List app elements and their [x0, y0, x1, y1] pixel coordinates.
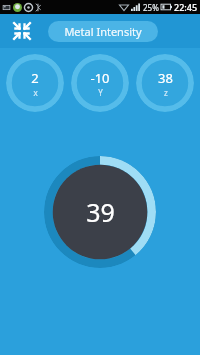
button[interactable]: 39	[44, 156, 156, 268]
staticText: Y	[98, 87, 103, 98]
staticText: z	[164, 87, 168, 98]
staticText: 22:45	[174, 1, 198, 13]
staticText: 2	[31, 69, 39, 87]
staticText: 25%	[143, 2, 159, 13]
staticText: Metal Intensity	[64, 24, 142, 39]
staticText: 38	[158, 69, 173, 87]
button[interactable]: 2	[6, 54, 64, 112]
staticText: -10	[90, 69, 110, 87]
button[interactable]: 38	[136, 54, 194, 112]
button[interactable]: Metal Intensity	[48, 21, 158, 42]
staticText: x	[33, 87, 38, 98]
staticText: 39	[86, 195, 115, 229]
button[interactable]: Collapse	[8, 17, 36, 45]
button[interactable]: -10	[71, 54, 129, 112]
